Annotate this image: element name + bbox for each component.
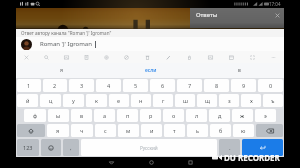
staticText: 4 <box>107 82 111 89</box>
staticText: в <box>238 67 241 74</box>
button[interactable]: ъ <box>263 94 283 107</box>
staticText: 8 <box>215 82 219 89</box>
button[interactable]: Recents <box>170 157 210 168</box>
button[interactable]: . <box>219 139 240 156</box>
button[interactable]: Backspace <box>256 124 283 137</box>
button[interactable]: л <box>186 109 207 122</box>
staticText: о <box>172 112 176 119</box>
button[interactable]: Tool 3 <box>76 51 96 63</box>
staticText: 0 <box>269 82 273 89</box>
button[interactable]: й <box>17 94 38 107</box>
button[interactable]: ж <box>232 109 253 122</box>
button[interactable]: б <box>210 124 231 137</box>
button[interactable]: Back <box>91 157 131 168</box>
staticText: Русский <box>140 145 158 151</box>
button[interactable]: 2 <box>43 79 67 92</box>
button[interactable]: Русский <box>81 139 217 156</box>
button[interactable]: 4 <box>96 79 121 92</box>
button[interactable]: у <box>63 94 84 107</box>
button[interactable]: Tool 9 <box>200 51 221 63</box>
staticText: т <box>173 127 176 134</box>
button[interactable]: Tool 6 <box>137 51 158 63</box>
button[interactable]: м <box>118 124 139 137</box>
button[interactable]: ц <box>40 94 61 107</box>
staticText: 1 <box>27 82 31 89</box>
button[interactable]: в <box>195 63 284 78</box>
button[interactable]: н <box>131 94 151 107</box>
staticText: л <box>195 112 199 119</box>
staticText: Roman 'J' Igroman <box>40 40 92 48</box>
staticText: ч <box>80 127 84 134</box>
button[interactable]: ш <box>175 94 195 107</box>
staticText: ь <box>196 127 199 134</box>
button[interactable]: Shift <box>17 124 45 137</box>
button[interactable]: , <box>63 139 79 156</box>
staticText: 9 <box>242 82 246 89</box>
button[interactable]: ь <box>187 124 208 137</box>
button[interactable]: ы <box>48 109 69 122</box>
button[interactable]: я <box>47 124 69 137</box>
button[interactable]: с <box>95 124 116 137</box>
button[interactable]: и <box>141 124 162 137</box>
button[interactable]: Tool 2 <box>56 51 76 63</box>
button[interactable]: е <box>109 94 129 107</box>
button[interactable]: 123 <box>17 139 39 156</box>
staticText: э <box>264 112 267 119</box>
button[interactable]: р <box>140 109 161 122</box>
staticText: ю <box>241 127 246 134</box>
button[interactable]: э <box>255 109 276 122</box>
staticText: 2 <box>53 82 57 89</box>
staticText: б <box>219 127 223 134</box>
button[interactable]: Tool 11 <box>242 51 263 63</box>
button[interactable]: 7 <box>177 79 202 92</box>
staticText: н <box>139 97 143 104</box>
button[interactable]: Tool 1 <box>36 51 56 63</box>
button[interactable]: Tool 10 <box>221 51 242 63</box>
staticText: 17:04 <box>269 1 281 7</box>
button[interactable]: х <box>241 94 261 107</box>
button[interactable]: 6 <box>150 79 175 92</box>
button[interactable]: если <box>106 63 195 78</box>
button[interactable]: Ответы <box>190 8 284 28</box>
button[interactable]: Tool 7 <box>158 51 179 63</box>
button[interactable]: Tool 4 <box>96 51 116 63</box>
button[interactable]: п <box>117 109 138 122</box>
button[interactable]: 3 <box>69 79 94 92</box>
button[interactable]: 8 <box>204 79 229 92</box>
button[interactable]: 9 <box>231 79 256 92</box>
button[interactable]: Home <box>131 157 171 168</box>
button[interactable]: д <box>209 109 230 122</box>
button[interactable]: к <box>86 94 107 107</box>
button[interactable]: Enter <box>242 139 283 156</box>
button[interactable]: 5 <box>123 79 148 92</box>
button[interactable]: 0 <box>258 79 283 92</box>
staticText: ш <box>183 97 188 104</box>
button[interactable]: я <box>16 63 106 78</box>
button[interactable]: а <box>94 109 115 122</box>
button[interactable]: ч <box>71 124 93 137</box>
button[interactable]: з <box>219 94 239 107</box>
button[interactable]: о <box>163 109 184 122</box>
staticText: й <box>26 97 30 104</box>
button[interactable]: Emoji <box>41 139 61 156</box>
staticText: к <box>95 97 98 104</box>
button[interactable]: ю <box>233 124 254 137</box>
button[interactable]: ф <box>24 109 46 122</box>
button[interactable]: в <box>71 109 92 122</box>
button[interactable]: 1 <box>17 79 41 92</box>
button[interactable]: Tool 0 <box>16 51 36 63</box>
staticText: д <box>218 112 222 119</box>
button[interactable]: Tool 8 <box>179 51 200 63</box>
staticText: щ <box>205 97 210 104</box>
staticText: 3 <box>80 82 84 89</box>
other: Close <box>275 13 280 18</box>
button[interactable]: т <box>164 124 185 137</box>
button[interactable]: Tool 5 <box>116 51 137 63</box>
button[interactable]: г <box>153 94 173 107</box>
staticText: ы <box>56 112 61 119</box>
staticText: с <box>104 127 107 134</box>
button[interactable]: щ <box>197 94 217 107</box>
staticText: и <box>150 127 154 134</box>
staticText: DU RECORDER <box>224 152 280 163</box>
